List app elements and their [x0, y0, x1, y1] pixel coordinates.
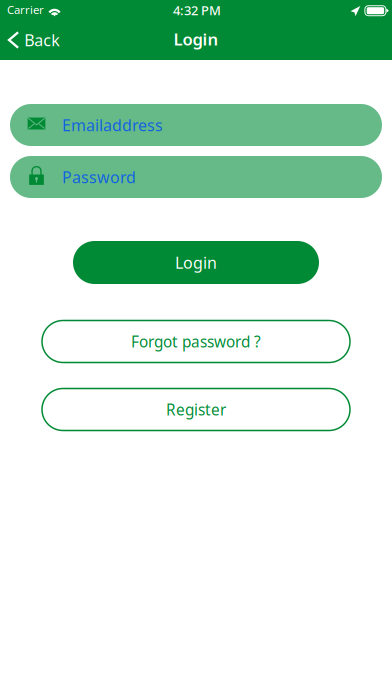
staticText: Carrier [7, 2, 44, 17]
staticText: Back [24, 29, 60, 51]
button[interactable]: Emailaddress [10, 104, 382, 146]
staticText: 4:32 PM [173, 2, 221, 19]
button[interactable]: Forgot password ? [42, 320, 350, 362]
staticText: Password [62, 166, 136, 188]
button[interactable]: Login [73, 241, 319, 284]
button[interactable]: Password [10, 156, 382, 198]
button[interactable]: Back [0, 20, 70, 60]
staticText: Login [173, 28, 218, 50]
staticText: Login [175, 252, 217, 273]
staticText: Register [166, 399, 226, 420]
button[interactable]: Register [42, 388, 350, 430]
staticText: Emailaddress [62, 114, 163, 136]
staticText: Forgot password ? [131, 331, 261, 352]
